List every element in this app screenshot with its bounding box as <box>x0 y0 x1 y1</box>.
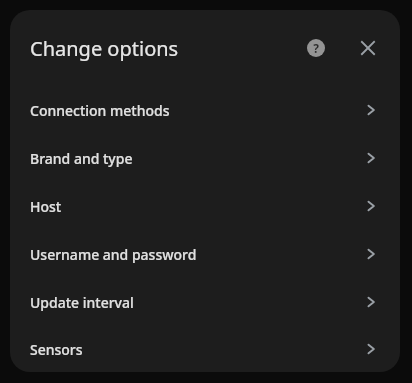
staticText: Sensors <box>30 340 362 359</box>
button[interactable]: Close <box>348 28 388 68</box>
staticText: ? <box>313 40 319 56</box>
staticText: Username and password <box>30 245 362 264</box>
button[interactable]: Update interval <box>10 278 400 326</box>
staticText: Change options <box>30 35 179 62</box>
staticText: Host <box>30 197 362 216</box>
button[interactable]: Username and password <box>10 230 400 278</box>
button[interactable]: Brand and type <box>10 134 400 182</box>
staticText: Connection methods <box>30 101 362 120</box>
staticText: Brand and type <box>30 149 362 168</box>
button[interactable]: Host <box>10 182 400 230</box>
button[interactable]: Connection methods <box>10 86 400 134</box>
staticText: Update interval <box>30 293 362 312</box>
button[interactable]: Sensors <box>10 326 400 372</box>
button[interactable]: Help <box>296 28 336 68</box>
